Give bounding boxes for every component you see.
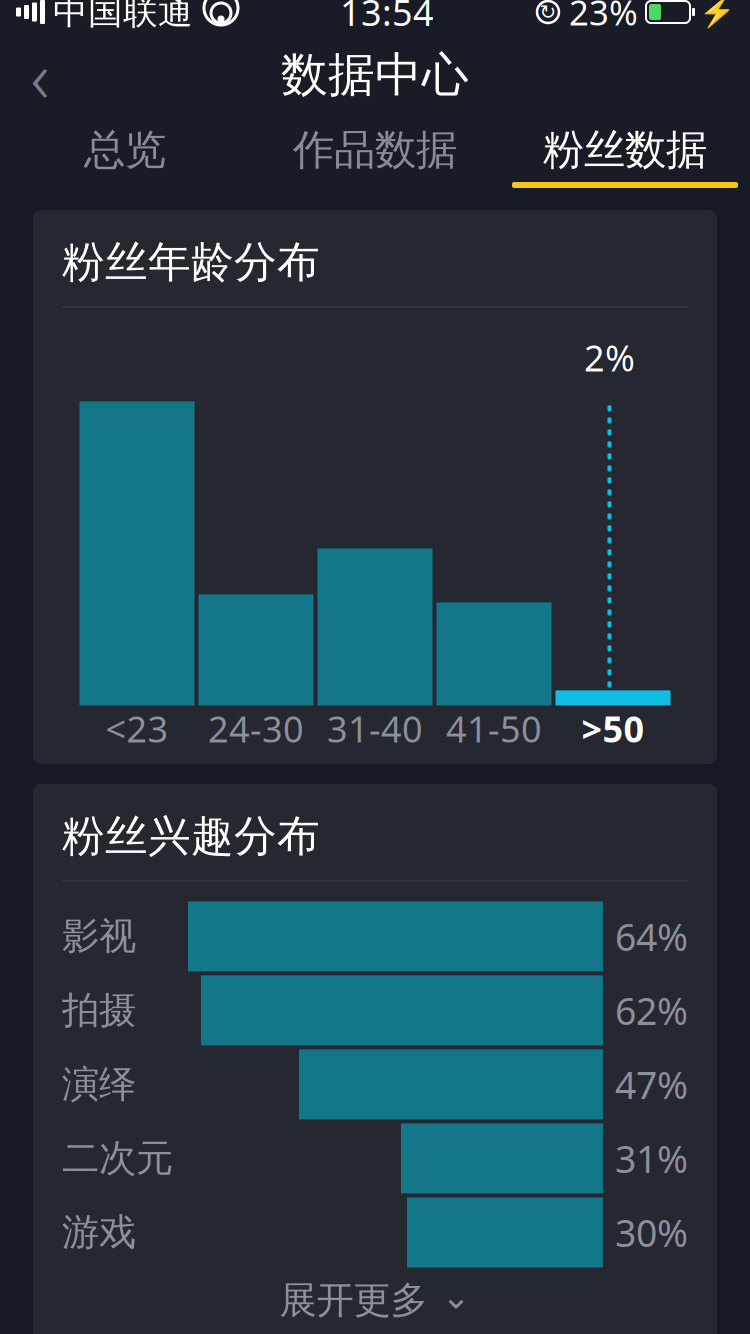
staticText: 粉丝年龄分布 bbox=[62, 236, 320, 288]
staticText: 13:54 bbox=[340, 0, 434, 36]
button[interactable]: 粉丝数据 bbox=[500, 118, 750, 188]
staticText: ‹ bbox=[30, 27, 49, 123]
staticText: 64% bbox=[615, 912, 688, 961]
staticText: 影视 bbox=[62, 913, 136, 959]
staticText: ⚡ bbox=[699, 0, 736, 29]
staticText: ⌄ bbox=[441, 1277, 470, 1316]
staticText: 粉丝数据 bbox=[543, 125, 707, 175]
button[interactable]: 总览 bbox=[0, 118, 250, 188]
staticText: 总览 bbox=[84, 125, 166, 175]
staticText: 31% bbox=[615, 1134, 688, 1183]
staticText: 二次元 bbox=[62, 1135, 173, 1181]
staticText: 30% bbox=[615, 1208, 688, 1257]
button[interactable]: 作品数据 bbox=[250, 118, 500, 188]
button[interactable]: 展开更多 bbox=[62, 1267, 688, 1333]
staticText: 作品数据 bbox=[293, 125, 457, 175]
staticText: ↻ bbox=[539, 1, 556, 23]
staticText: 62% bbox=[615, 986, 688, 1035]
staticText: 2% bbox=[584, 334, 635, 381]
staticText: 中国联通 bbox=[53, 0, 193, 33]
staticText: 24-30 bbox=[208, 704, 304, 752]
staticText: 数据中心 bbox=[281, 46, 469, 104]
button[interactable]: 返回 bbox=[0, 34, 80, 116]
staticText: 47% bbox=[615, 1060, 688, 1109]
staticText: 拍摄 bbox=[62, 987, 136, 1033]
staticText: 演绎 bbox=[62, 1061, 136, 1107]
staticText: >50 bbox=[581, 704, 644, 752]
staticText: 粉丝兴趣分布 bbox=[62, 810, 320, 862]
staticText: 31-40 bbox=[327, 704, 423, 752]
staticText: 游戏 bbox=[62, 1209, 136, 1255]
staticText: <23 bbox=[105, 704, 168, 752]
staticText: 展开更多 bbox=[279, 1277, 427, 1323]
staticText: 41-50 bbox=[446, 704, 542, 752]
staticText: 23% bbox=[569, 0, 638, 35]
